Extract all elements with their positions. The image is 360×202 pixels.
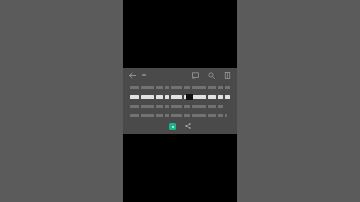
button[interactable]: More options bbox=[222, 70, 233, 81]
button[interactable]: Cast bbox=[190, 70, 201, 81]
button[interactable]: Search bbox=[206, 70, 217, 81]
button[interactable]: Share bbox=[183, 121, 193, 131]
button[interactable]: Back bbox=[127, 70, 138, 81]
button[interactable]: Listen bbox=[167, 121, 177, 131]
